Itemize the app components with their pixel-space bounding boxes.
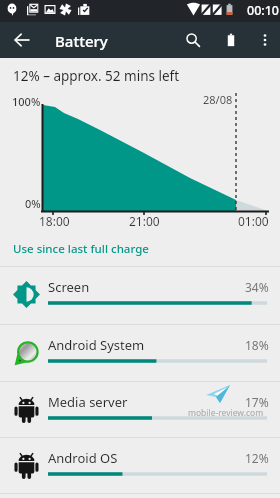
staticText: 34% — [245, 279, 269, 295]
staticText: 12% — [245, 450, 269, 466]
button[interactable]: More options — [253, 22, 277, 58]
staticText: 28/08 — [203, 92, 233, 107]
staticText: mobile-review.com — [188, 407, 264, 419]
staticText: 100% — [12, 94, 41, 109]
staticText: 12% – approx. 52 mins left — [13, 67, 180, 85]
button[interactable]: Android OS — [0, 438, 280, 494]
button[interactable]: Navigate up — [4, 22, 40, 58]
staticText: 18:00 — [39, 213, 70, 229]
staticText: Screen — [48, 278, 90, 296]
staticText: Media server — [48, 393, 128, 411]
staticText: 00:10 — [247, 2, 280, 19]
staticText: 01:00 — [238, 213, 269, 229]
button[interactable]: Use since last full charge — [0, 238, 280, 264]
button[interactable]: Battery saver — [219, 22, 243, 58]
staticText: Battery — [55, 31, 108, 51]
staticText: 17% — [245, 394, 269, 410]
staticText: Android OS — [48, 449, 118, 467]
staticText: 21:00 — [129, 213, 160, 229]
button[interactable]: Media server — [0, 382, 280, 438]
button[interactable]: Android System — [0, 325, 280, 381]
staticText: Use since last full charge — [13, 241, 149, 257]
staticText: 18% — [245, 337, 269, 353]
staticText: Android System — [48, 336, 145, 354]
button[interactable]: Screen — [0, 267, 280, 323]
button[interactable]: Search — [181, 22, 205, 58]
staticText: 0% — [25, 196, 41, 211]
